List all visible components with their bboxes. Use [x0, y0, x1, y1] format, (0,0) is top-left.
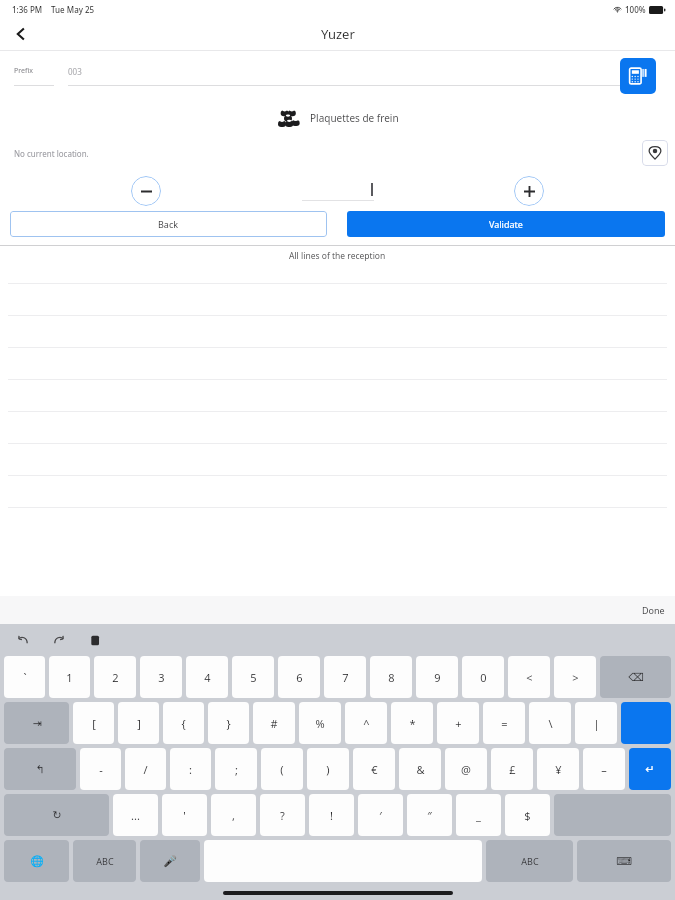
button[interactable]: € — [353, 748, 395, 790]
button[interactable]: ′ — [358, 794, 403, 836]
button[interactable]: - — [80, 748, 121, 790]
button[interactable]: Hide keyboard — [577, 840, 671, 882]
staticText: ; — [235, 762, 238, 777]
button[interactable]: _ — [456, 794, 501, 836]
staticText: 2 — [112, 670, 119, 685]
button[interactable] — [0, 475, 675, 507]
button[interactable]: Undo — [4, 748, 76, 790]
button[interactable]: > — [554, 656, 596, 698]
button[interactable]: = — [483, 702, 525, 744]
button[interactable]: , — [211, 794, 256, 836]
button[interactable]: 7 — [324, 656, 366, 698]
button[interactable]: Decrease quantity — [131, 176, 161, 206]
staticText: ^ — [363, 716, 370, 731]
button[interactable]: 1 — [49, 656, 90, 698]
button[interactable]: Language — [4, 840, 69, 882]
staticText: ¥ — [555, 762, 562, 777]
button[interactable]: Redo — [4, 794, 109, 836]
button[interactable]: 0 — [462, 656, 504, 698]
button[interactable]: Back — [10, 211, 327, 237]
button[interactable]: | — [575, 702, 617, 744]
button[interactable]: ` — [4, 656, 45, 698]
button[interactable]: ( — [261, 748, 303, 790]
button[interactable] — [0, 411, 675, 443]
button[interactable]: ' — [162, 794, 207, 836]
button[interactable]: Increase quantity — [514, 176, 544, 206]
button[interactable]: ^ — [345, 702, 387, 744]
button[interactable]: < — [508, 656, 550, 698]
button[interactable]: % — [299, 702, 341, 744]
button[interactable]: 8 — [370, 656, 412, 698]
staticText: 0 — [480, 670, 487, 685]
staticText: ⌫ — [628, 671, 644, 684]
button[interactable] — [0, 443, 675, 475]
staticText: ( — [280, 762, 284, 777]
button[interactable] — [0, 347, 675, 379]
button[interactable]: 6 — [278, 656, 320, 698]
button[interactable]: ABC — [73, 840, 136, 882]
button[interactable]: £ — [491, 748, 533, 790]
staticText: 100% — [625, 4, 646, 15]
button[interactable] — [0, 283, 675, 315]
button[interactable]: ? — [260, 794, 305, 836]
button[interactable]: Dictate — [140, 840, 200, 882]
staticText: 5 — [250, 670, 257, 685]
button[interactable] — [0, 379, 675, 411]
staticText: ↻ — [52, 809, 62, 822]
button[interactable]: Done — [642, 604, 665, 616]
button[interactable] — [0, 315, 675, 347]
button[interactable]: 3 — [140, 656, 182, 698]
button[interactable]: 9 — [416, 656, 458, 698]
button[interactable]: } — [208, 702, 249, 744]
button[interactable]: 4 — [186, 656, 228, 698]
staticText: & — [416, 762, 425, 777]
button[interactable]: : — [170, 748, 211, 790]
button[interactable]: @ — [445, 748, 487, 790]
button[interactable]: * — [391, 702, 433, 744]
button[interactable]: 5 — [232, 656, 274, 698]
staticText: 003 — [68, 66, 82, 77]
staticText: 🎤 — [163, 855, 177, 868]
button[interactable]: Tab — [4, 702, 69, 744]
staticText: ) — [326, 762, 330, 777]
button[interactable]: Scan barcode — [620, 58, 656, 94]
staticText: 1 — [66, 670, 73, 685]
button[interactable]: { — [163, 702, 204, 744]
button[interactable]: ) — [307, 748, 349, 790]
button[interactable]: & — [399, 748, 441, 790]
staticText: $ — [524, 808, 531, 823]
button[interactable]: [ — [73, 702, 114, 744]
button[interactable]: Set location — [642, 140, 668, 166]
button[interactable]: Back — [4, 18, 38, 50]
staticText: ⌨ — [616, 855, 632, 868]
staticText: 3 — [158, 670, 165, 685]
button[interactable]: ABC — [486, 840, 573, 882]
button[interactable]: – — [583, 748, 625, 790]
button[interactable]: Redo — [50, 631, 68, 649]
button[interactable]: $ — [505, 794, 550, 836]
button[interactable]: ; — [215, 748, 257, 790]
button[interactable]: ... — [113, 794, 158, 836]
staticText: _ — [476, 808, 481, 823]
button[interactable]: # — [253, 702, 295, 744]
button[interactable]: ! — [309, 794, 354, 836]
button[interactable]: \ — [529, 702, 571, 744]
button[interactable]: Undo — [14, 631, 32, 649]
button[interactable]: Return — [621, 702, 671, 744]
button[interactable]: Return — [629, 748, 671, 790]
button[interactable]: / — [125, 748, 166, 790]
button[interactable]: Backspace — [600, 656, 671, 698]
button[interactable]: Validate — [347, 211, 665, 237]
staticText: : — [189, 762, 192, 777]
staticText: 1:36 PM — [12, 4, 43, 15]
button[interactable]: ] — [118, 702, 159, 744]
button[interactable]: 2 — [94, 656, 136, 698]
button[interactable]: + — [437, 702, 479, 744]
button[interactable] — [0, 507, 675, 539]
button[interactable]: ¥ — [537, 748, 579, 790]
button[interactable]: ″ — [407, 794, 452, 836]
staticText: , — [232, 808, 235, 823]
button[interactable]: Paste — [86, 631, 104, 649]
